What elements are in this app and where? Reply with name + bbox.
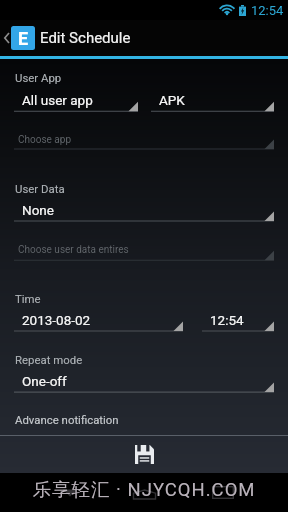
staticText: All user app (22, 92, 93, 108)
staticText: None (22, 202, 54, 218)
staticText: Edit Schedule (40, 29, 131, 47)
button[interactable]: 2013-08-02 (14, 306, 183, 338)
button[interactable]: All user app (14, 86, 138, 118)
button[interactable]: None (14, 196, 274, 228)
button[interactable]: One-off (14, 367, 274, 399)
button[interactable]: Choose user data entires (14, 238, 274, 267)
staticText: 乐享轻汇 · NJYCQH.COM (32, 478, 256, 501)
staticText: Advance notification (15, 413, 119, 426)
staticText: Choose user data entires (18, 244, 129, 256)
button[interactable]: Navigate up (0, 26, 35, 50)
staticText: APK (159, 92, 185, 108)
staticText: One-off (22, 373, 67, 389)
button[interactable]: Back (54, 479, 86, 505)
button[interactable]: Recent apps (207, 479, 239, 505)
staticText: Time (15, 292, 41, 305)
staticText: 2013-08-02 (22, 312, 91, 328)
staticText: Choose app (18, 134, 72, 146)
button[interactable]: Choose app (14, 128, 274, 156)
button[interactable]: Home (128, 481, 160, 507)
button[interactable]: APK (151, 86, 274, 118)
staticText: 12:54 (210, 312, 244, 328)
staticText: Repeat mode (15, 353, 83, 366)
button[interactable]: Save (122, 436, 166, 472)
button[interactable]: 12:54 (202, 306, 274, 338)
staticText: 12:54 (251, 3, 284, 18)
staticText: User App (15, 71, 62, 84)
staticText: User Data (15, 182, 65, 195)
staticText: E (18, 28, 29, 49)
